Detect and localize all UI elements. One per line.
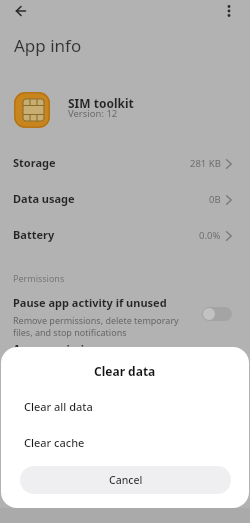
button[interactable]: Clear all data (1, 395, 249, 419)
staticText: 281 KB (190, 157, 221, 170)
button[interactable] (221, 2, 239, 20)
staticText: Remove permissions, delete temporary (13, 314, 179, 326)
button[interactable]: Storage (0, 153, 250, 173)
staticText: SIM toolkit (68, 95, 134, 111)
staticText: Pause app activity if unused (13, 295, 167, 310)
button[interactable] (202, 307, 232, 321)
button[interactable]: Cancel (20, 466, 231, 494)
staticText: Data usage (13, 191, 75, 206)
staticText: 0.0% (199, 229, 221, 242)
button[interactable]: Battery (0, 225, 250, 245)
button[interactable]: Data usage (0, 189, 250, 209)
staticText: Clear all data (24, 399, 93, 414)
staticText: Battery (13, 227, 55, 242)
staticText: Storage (13, 155, 56, 170)
staticText: Permissions (13, 272, 65, 284)
staticText: Version: 12 (68, 107, 118, 120)
staticText: App permissions (13, 341, 104, 356)
staticText: App info (14, 34, 82, 57)
button[interactable] (10, 2, 32, 24)
staticText: files, and stop notifications (13, 326, 127, 338)
staticText: Cancel (109, 473, 143, 487)
button[interactable]: Pause app activity if unused (0, 295, 250, 343)
button[interactable]: Clear cache (1, 431, 249, 455)
staticText: Clear data (94, 363, 156, 379)
staticText: Clear cache (24, 435, 85, 450)
staticText: 0B (209, 193, 221, 206)
